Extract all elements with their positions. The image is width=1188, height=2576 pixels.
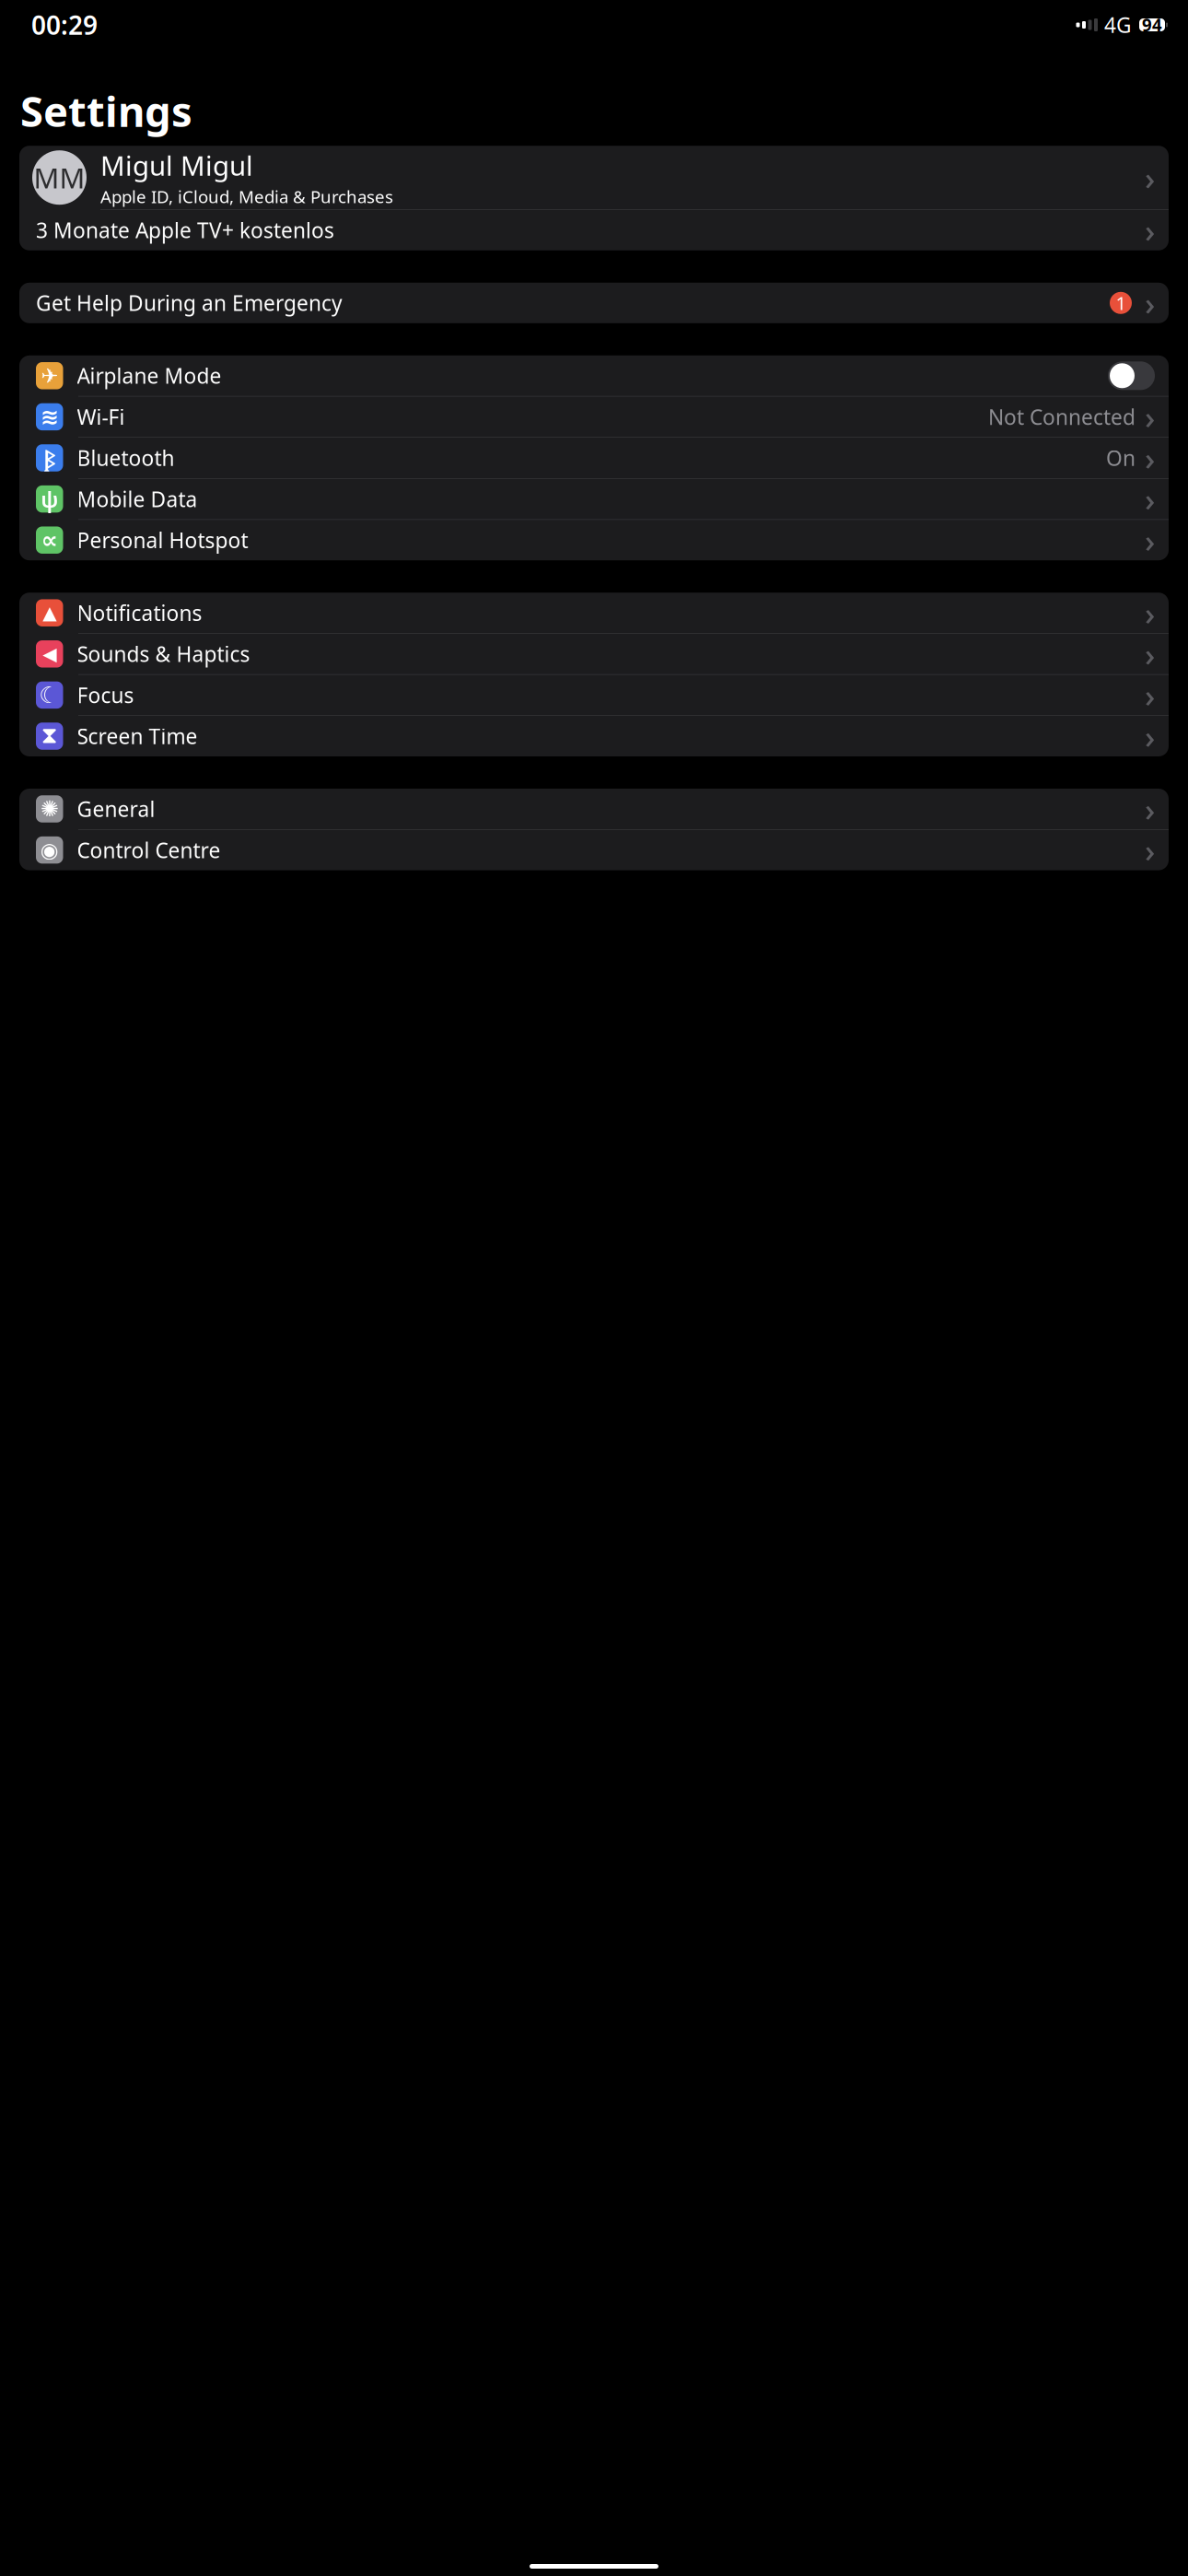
staticText: Settings — [20, 83, 192, 138]
staticText: ≋ — [40, 404, 59, 429]
staticText: › — [1145, 478, 1155, 520]
button[interactable]: ✈ — [19, 355, 1169, 396]
button[interactable]: ⧗ — [19, 716, 1169, 756]
staticText: Airplane Mode — [77, 362, 221, 390]
button[interactable]: ∝ — [19, 520, 1169, 560]
button[interactable]: ☾ — [19, 675, 1169, 715]
staticText: Wi-Fi — [77, 403, 125, 431]
staticText: Sounds & Haptics — [77, 640, 250, 668]
staticText: ⧗ — [41, 725, 58, 748]
staticText: Control Centre — [77, 836, 221, 864]
staticText: Focus — [77, 681, 134, 709]
staticText: › — [1145, 519, 1155, 561]
staticText: On — [1106, 444, 1136, 472]
staticText: Screen Time — [77, 722, 198, 750]
staticText: Bluetooth — [77, 444, 175, 472]
button[interactable]: 3 Monate Apple TV+ kostenlos — [19, 210, 1169, 250]
button[interactable]: ≋ — [19, 397, 1169, 437]
staticText: › — [1145, 156, 1155, 199]
button[interactable]: ▲ — [19, 593, 1169, 633]
staticText: › — [1145, 788, 1155, 830]
staticText: › — [1145, 282, 1155, 324]
button[interactable]: ψ — [19, 479, 1169, 519]
staticText: ◀ — [43, 644, 56, 664]
button[interactable]: ✺ — [19, 789, 1169, 829]
button[interactable]: MM — [19, 146, 1169, 209]
staticText: ◉ — [40, 838, 59, 862]
staticText: Personal Hotspot — [77, 526, 248, 554]
staticText: General — [77, 795, 155, 823]
staticText: ∝ — [41, 527, 58, 553]
button[interactable]: ◉ — [19, 830, 1169, 870]
staticText: › — [1145, 592, 1155, 634]
staticText: MM — [34, 159, 85, 196]
staticText: › — [1145, 633, 1155, 675]
staticText: › — [1145, 715, 1155, 757]
button[interactable]: Get Help During an Emergency — [19, 283, 1169, 323]
staticText: ▲ — [43, 602, 56, 623]
staticText: 4G — [1104, 11, 1132, 39]
staticText: ✺ — [40, 796, 59, 821]
staticText: ☾ — [39, 682, 60, 708]
staticText: Migul Migul — [100, 147, 253, 183]
staticText: ᛒ — [43, 443, 55, 473]
staticText: 94 — [1142, 13, 1162, 36]
staticText: › — [1145, 437, 1155, 479]
staticText: ✈ — [41, 364, 58, 388]
staticText: Mobile Data — [77, 485, 198, 513]
staticText: Notifications — [77, 599, 202, 627]
button[interactable]: ◀ — [19, 634, 1169, 674]
staticText: › — [1145, 829, 1155, 871]
staticText: › — [1145, 674, 1155, 716]
staticText: ψ — [41, 484, 58, 514]
staticText: 00:29 — [31, 8, 98, 42]
staticText: Not Connected — [988, 403, 1136, 431]
staticText: 3 Monate Apple TV+ kostenlos — [36, 216, 334, 244]
staticText: › — [1145, 396, 1155, 438]
staticText: 1 — [1116, 291, 1126, 315]
staticText: › — [1145, 209, 1155, 251]
button[interactable]: ᛒ — [19, 438, 1169, 478]
staticText: Get Help During an Emergency — [36, 289, 343, 317]
staticText: Apple ID, iCloud, Media & Purchases — [100, 185, 393, 208]
